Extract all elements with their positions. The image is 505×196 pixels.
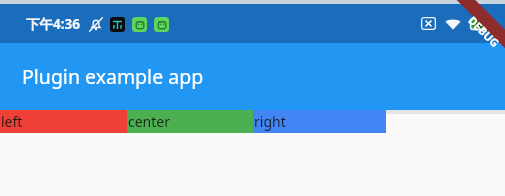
other: Wi-Fi connected: [445, 18, 461, 30]
other: Silent mode: [89, 17, 103, 32]
other: Notification: [132, 17, 147, 32]
button[interactable]: center: [127, 110, 253, 133]
staticText: 下午4:36: [26, 15, 80, 33]
staticText: DEBUG: [465, 13, 503, 50]
other: No SIM card: [421, 17, 436, 30]
button[interactable]: right: [253, 110, 386, 133]
staticText: right: [254, 112, 286, 131]
other: App notification: [110, 17, 125, 32]
button[interactable]: left: [0, 110, 127, 133]
staticText: Plugin example app: [22, 63, 204, 90]
other: Notification: [154, 17, 169, 32]
other: Battery 100 percent: [470, 18, 493, 30]
staticText: left: [1, 112, 23, 131]
staticText: center: [128, 112, 170, 131]
staticText: 100: [474, 19, 488, 30]
